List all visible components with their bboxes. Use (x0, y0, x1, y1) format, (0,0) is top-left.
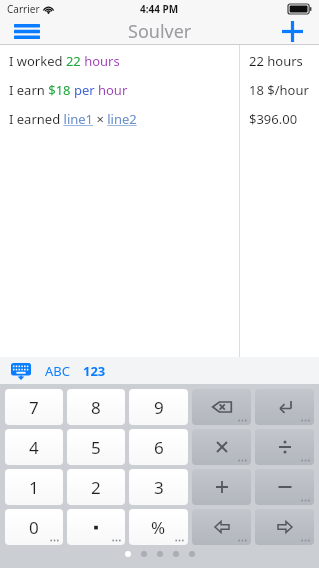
button[interactable]: Multiply (192, 429, 251, 465)
button[interactable]: Hide keyboard (11, 363, 31, 380)
staticText: 4 (29, 436, 39, 459)
staticText: 2 (91, 476, 101, 499)
button[interactable]: Decimal point (67, 509, 125, 545)
button[interactable]: Divide (255, 429, 314, 465)
button[interactable]: Delete (192, 389, 251, 425)
button[interactable]: 2 (67, 469, 125, 505)
button[interactable]: 0 (5, 509, 63, 545)
staticText: 7 (29, 396, 39, 419)
staticText: 4:44 PM (140, 2, 179, 16)
staticText: 123 (83, 362, 106, 380)
button[interactable]: Menu (0, 18, 54, 45)
staticText: $396.00 (249, 110, 298, 128)
button[interactable]: 4 (5, 429, 63, 465)
button[interactable]: % (129, 509, 188, 545)
staticText: ABC (45, 362, 70, 380)
button[interactable]: ABC (45, 362, 70, 380)
button[interactable]: Plus (192, 469, 251, 505)
staticText: 18 $/hour (249, 81, 309, 99)
staticText: Soulver (128, 19, 192, 44)
button[interactable]: I worked 22 hours (0, 46, 319, 75)
button[interactable]: 9 (129, 389, 188, 425)
staticText: Carrier (7, 2, 40, 16)
staticText: 5 (91, 436, 101, 459)
button[interactable]: 3 (129, 469, 188, 505)
staticText: I earned line1 × line2 (9, 110, 137, 128)
button[interactable]: I earn $18 per hour (0, 75, 319, 104)
staticText: 9 (154, 396, 164, 419)
button[interactable]: 7 (5, 389, 63, 425)
staticText: I worked 22 hours (9, 52, 120, 70)
button[interactable]: 8 (67, 389, 125, 425)
button[interactable]: 123 (83, 362, 106, 380)
staticText: 0 (29, 516, 39, 539)
button[interactable]: Return (255, 389, 314, 425)
staticText: I earn $18 per hour (9, 81, 128, 99)
button[interactable]: Move right (255, 509, 314, 545)
button[interactable]: Minus (255, 469, 314, 505)
staticText: 8 (91, 396, 101, 419)
button[interactable]: 1 (5, 469, 63, 505)
button[interactable]: I earned line1 × line2 (0, 104, 319, 133)
staticText: 22 hours (249, 52, 303, 70)
button[interactable]: Add (265, 18, 319, 45)
staticText: % (151, 516, 166, 539)
staticText: 3 (154, 476, 164, 499)
staticText: 6 (154, 436, 164, 459)
button[interactable]: 6 (129, 429, 188, 465)
staticText: 1 (29, 476, 39, 499)
button[interactable]: Move left (192, 509, 251, 545)
button[interactable]: 5 (67, 429, 125, 465)
